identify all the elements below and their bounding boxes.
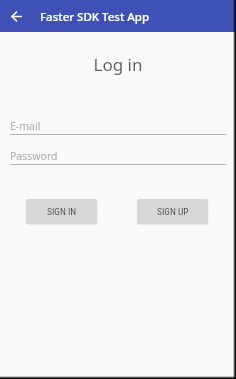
button[interactable]: SIGN IN (26, 199, 97, 224)
staticText: Password (10, 149, 58, 163)
staticText: Faster SDK Test App (40, 9, 150, 25)
button[interactable]: Navigate up (0, 0, 32, 32)
button[interactable]: E-mail (10, 119, 226, 139)
staticText: SIGN IN (47, 206, 77, 217)
staticText: SIGN UP (157, 206, 189, 217)
staticText: Log in (0, 53, 236, 76)
staticText: E-mail (10, 119, 41, 133)
button[interactable]: Password (10, 149, 226, 169)
button[interactable]: SIGN UP (137, 199, 208, 224)
